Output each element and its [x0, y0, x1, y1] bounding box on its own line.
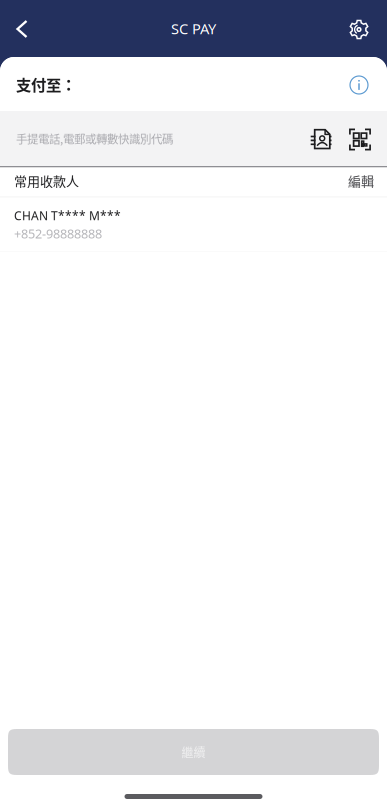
staticText: 手提電話,電郵或轉數快識別代碼	[16, 130, 173, 147]
staticText: +852-98888888	[14, 225, 102, 242]
staticText: CHAN T**** M***	[14, 207, 121, 224]
button[interactable]: 編輯	[342, 166, 380, 198]
staticText: SC PAY	[171, 18, 216, 38]
button[interactable]: Choose from contacts	[305, 121, 344, 155]
button[interactable]: Settings	[337, 5, 384, 51]
staticText: 編輯	[348, 171, 374, 190]
staticText: 常用收款人	[14, 171, 79, 190]
button[interactable]: Information	[342, 66, 378, 102]
button[interactable]: Back	[3, 6, 44, 51]
button[interactable]: Scan QR code	[344, 121, 376, 155]
button[interactable]: CHAN T**** M***	[0, 197, 387, 251]
staticText: 繼續	[181, 743, 205, 761]
staticText: 支付至：	[16, 73, 76, 95]
